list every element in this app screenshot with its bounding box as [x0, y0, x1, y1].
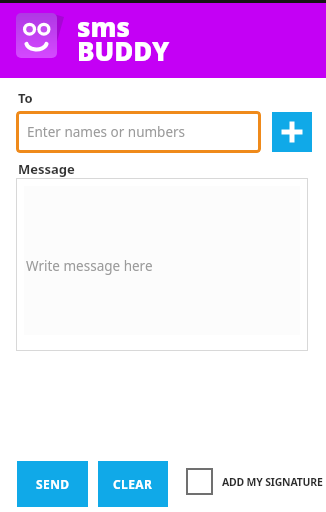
- staticText: ADD MY SIGNATURE: [222, 475, 323, 489]
- staticText: Write message here: [26, 257, 153, 275]
- button[interactable]: ADD MY SIGNATURE: [186, 468, 323, 495]
- staticText: CLEAR: [113, 476, 153, 492]
- staticText: To: [18, 89, 33, 107]
- staticText: Message: [18, 160, 75, 178]
- staticText: BUDDY: [77, 33, 170, 68]
- staticText: Enter names or numbers: [27, 123, 186, 141]
- button[interactable]: SEND: [17, 461, 88, 507]
- button[interactable]: CLEAR: [98, 461, 168, 507]
- staticText: sms: [77, 9, 130, 44]
- button[interactable]: Enter names or numbers: [16, 111, 261, 153]
- button[interactable]: Add recipient: [272, 112, 312, 152]
- button[interactable]: Write message here: [16, 178, 308, 351]
- staticText: SEND: [36, 476, 70, 492]
